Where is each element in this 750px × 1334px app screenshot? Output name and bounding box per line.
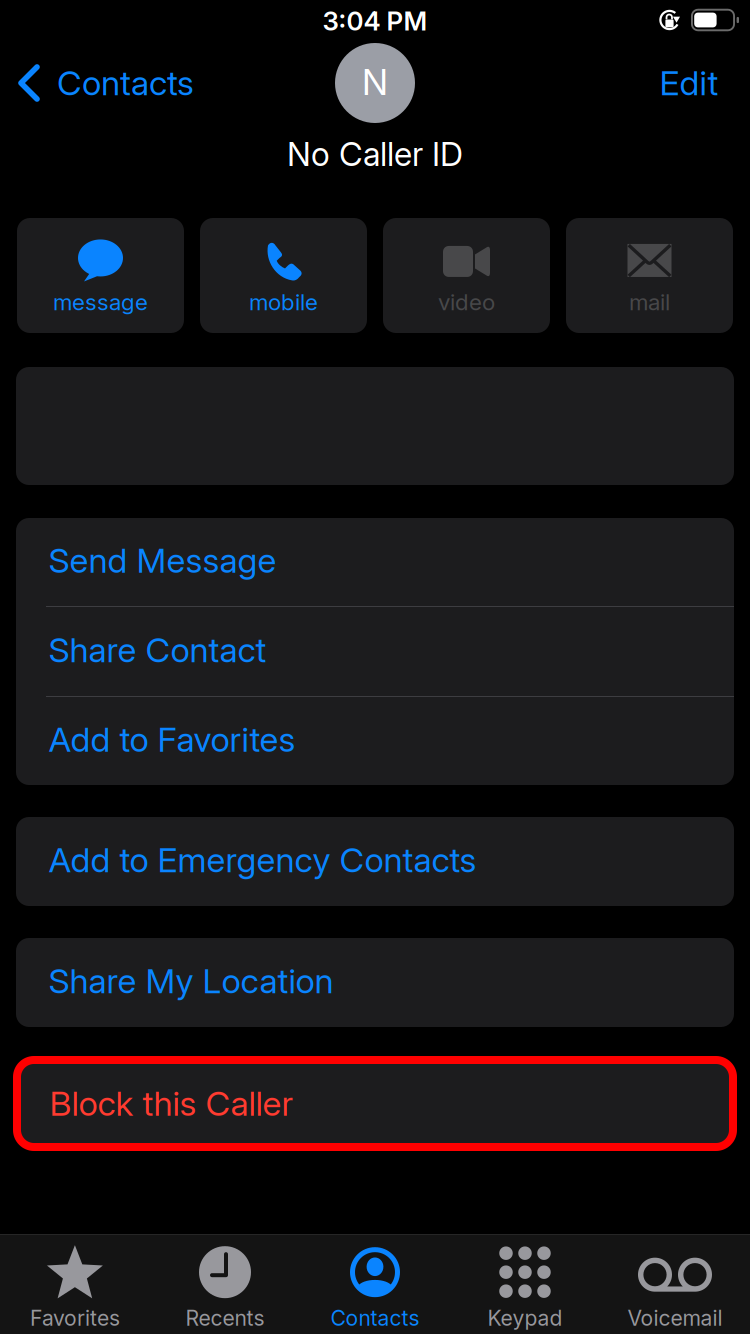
staticText: No Caller ID <box>287 134 463 174</box>
staticText: Contacts <box>330 1305 419 1331</box>
staticText: message <box>53 288 148 315</box>
button[interactable]: Favorites <box>0 1235 150 1334</box>
staticText: Add to Favorites <box>48 719 295 760</box>
staticText: Contacts <box>57 62 194 103</box>
button[interactable]: Share Contact <box>16 607 734 696</box>
button[interactable]: Voicemail <box>600 1235 750 1334</box>
staticText: Voicemail <box>627 1305 722 1331</box>
staticText: Keypad <box>487 1305 562 1331</box>
staticText: Send Message <box>48 540 276 581</box>
staticText: 3:04 PM <box>322 5 427 37</box>
button[interactable]: Share My Location <box>16 938 734 1027</box>
button[interactable]: Edit <box>635 54 750 112</box>
button[interactable]: Contacts <box>300 1235 450 1334</box>
button[interactable]: Add to Favorites <box>16 697 734 785</box>
staticText: Recents <box>185 1305 264 1331</box>
staticText: Favorites <box>30 1305 120 1331</box>
staticText: Block this Caller <box>49 1083 293 1124</box>
staticText: video <box>438 288 495 315</box>
staticText: Add to Emergency Contacts <box>48 839 476 880</box>
staticText: Share Contact <box>48 629 266 670</box>
staticText: Share My Location <box>48 960 333 1001</box>
staticText: mail <box>629 288 670 315</box>
button[interactable]: Send Message <box>16 518 734 606</box>
staticText: mobile <box>249 288 318 315</box>
button[interactable]: mobile <box>200 218 367 333</box>
staticText: Edit <box>659 62 718 103</box>
button[interactable]: Recents <box>150 1235 300 1334</box>
button[interactable]: Keypad <box>450 1235 600 1334</box>
button[interactable]: video <box>383 218 550 333</box>
button[interactable]: message <box>17 218 184 333</box>
button[interactable]: Add to Emergency Contacts <box>16 817 734 906</box>
staticText: N <box>362 60 388 104</box>
button[interactable]: Block this Caller <box>17 1060 733 1147</box>
button[interactable]: Contacts <box>0 54 208 112</box>
button[interactable]: mail <box>566 218 733 333</box>
